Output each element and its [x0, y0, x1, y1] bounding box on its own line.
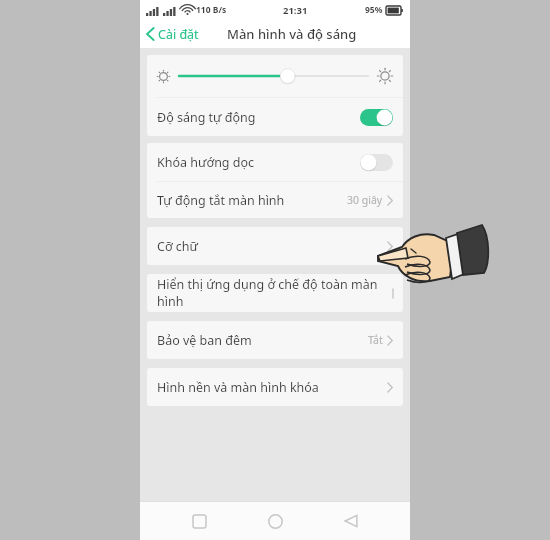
staticText: Cỡ chữ: [157, 238, 199, 255]
button[interactable]: Khóa hướng dọc: [147, 143, 403, 181]
button[interactable]: Hiển thị ứng dụng ở chế độ toàn màn hình: [147, 274, 403, 312]
button[interactable]: Recents: [182, 504, 216, 538]
button[interactable]: Home: [258, 504, 292, 538]
staticText: Màn hình và độ sáng: [227, 25, 357, 43]
button[interactable]: Toggle on: [360, 109, 393, 126]
staticText: 110 B/s: [196, 4, 227, 16]
staticText: 30 giây: [347, 193, 383, 207]
button[interactable]: Cỡ chữ: [147, 227, 403, 265]
button[interactable]: Bảo vệ ban đêm: [147, 321, 403, 359]
staticText: Khóa hướng dọc: [157, 154, 255, 171]
button[interactable]: Cài đặt: [140, 20, 205, 48]
staticText: Tắt: [368, 333, 383, 347]
button[interactable]: Hình nền và màn hình khóa: [147, 368, 403, 406]
button[interactable]: Back: [334, 504, 368, 538]
staticText: 95%: [365, 4, 383, 16]
staticText: 21:31: [283, 4, 308, 17]
button[interactable]: Tự động tắt màn hình: [147, 182, 403, 218]
staticText: Cài đặt: [158, 26, 199, 43]
staticText: Độ sáng tự động: [157, 109, 256, 126]
button[interactable]: Toggle off: [360, 154, 393, 171]
staticText: Hình nền và màn hình khóa: [157, 379, 319, 396]
button[interactable]: Độ sáng tự động: [147, 98, 403, 136]
staticText: Tự động tắt màn hình: [157, 192, 285, 209]
staticText: Hiển thị ứng dụng ở chế độ toàn màn hình: [157, 276, 393, 310]
staticText: Bảo vệ ban đêm: [157, 332, 252, 349]
